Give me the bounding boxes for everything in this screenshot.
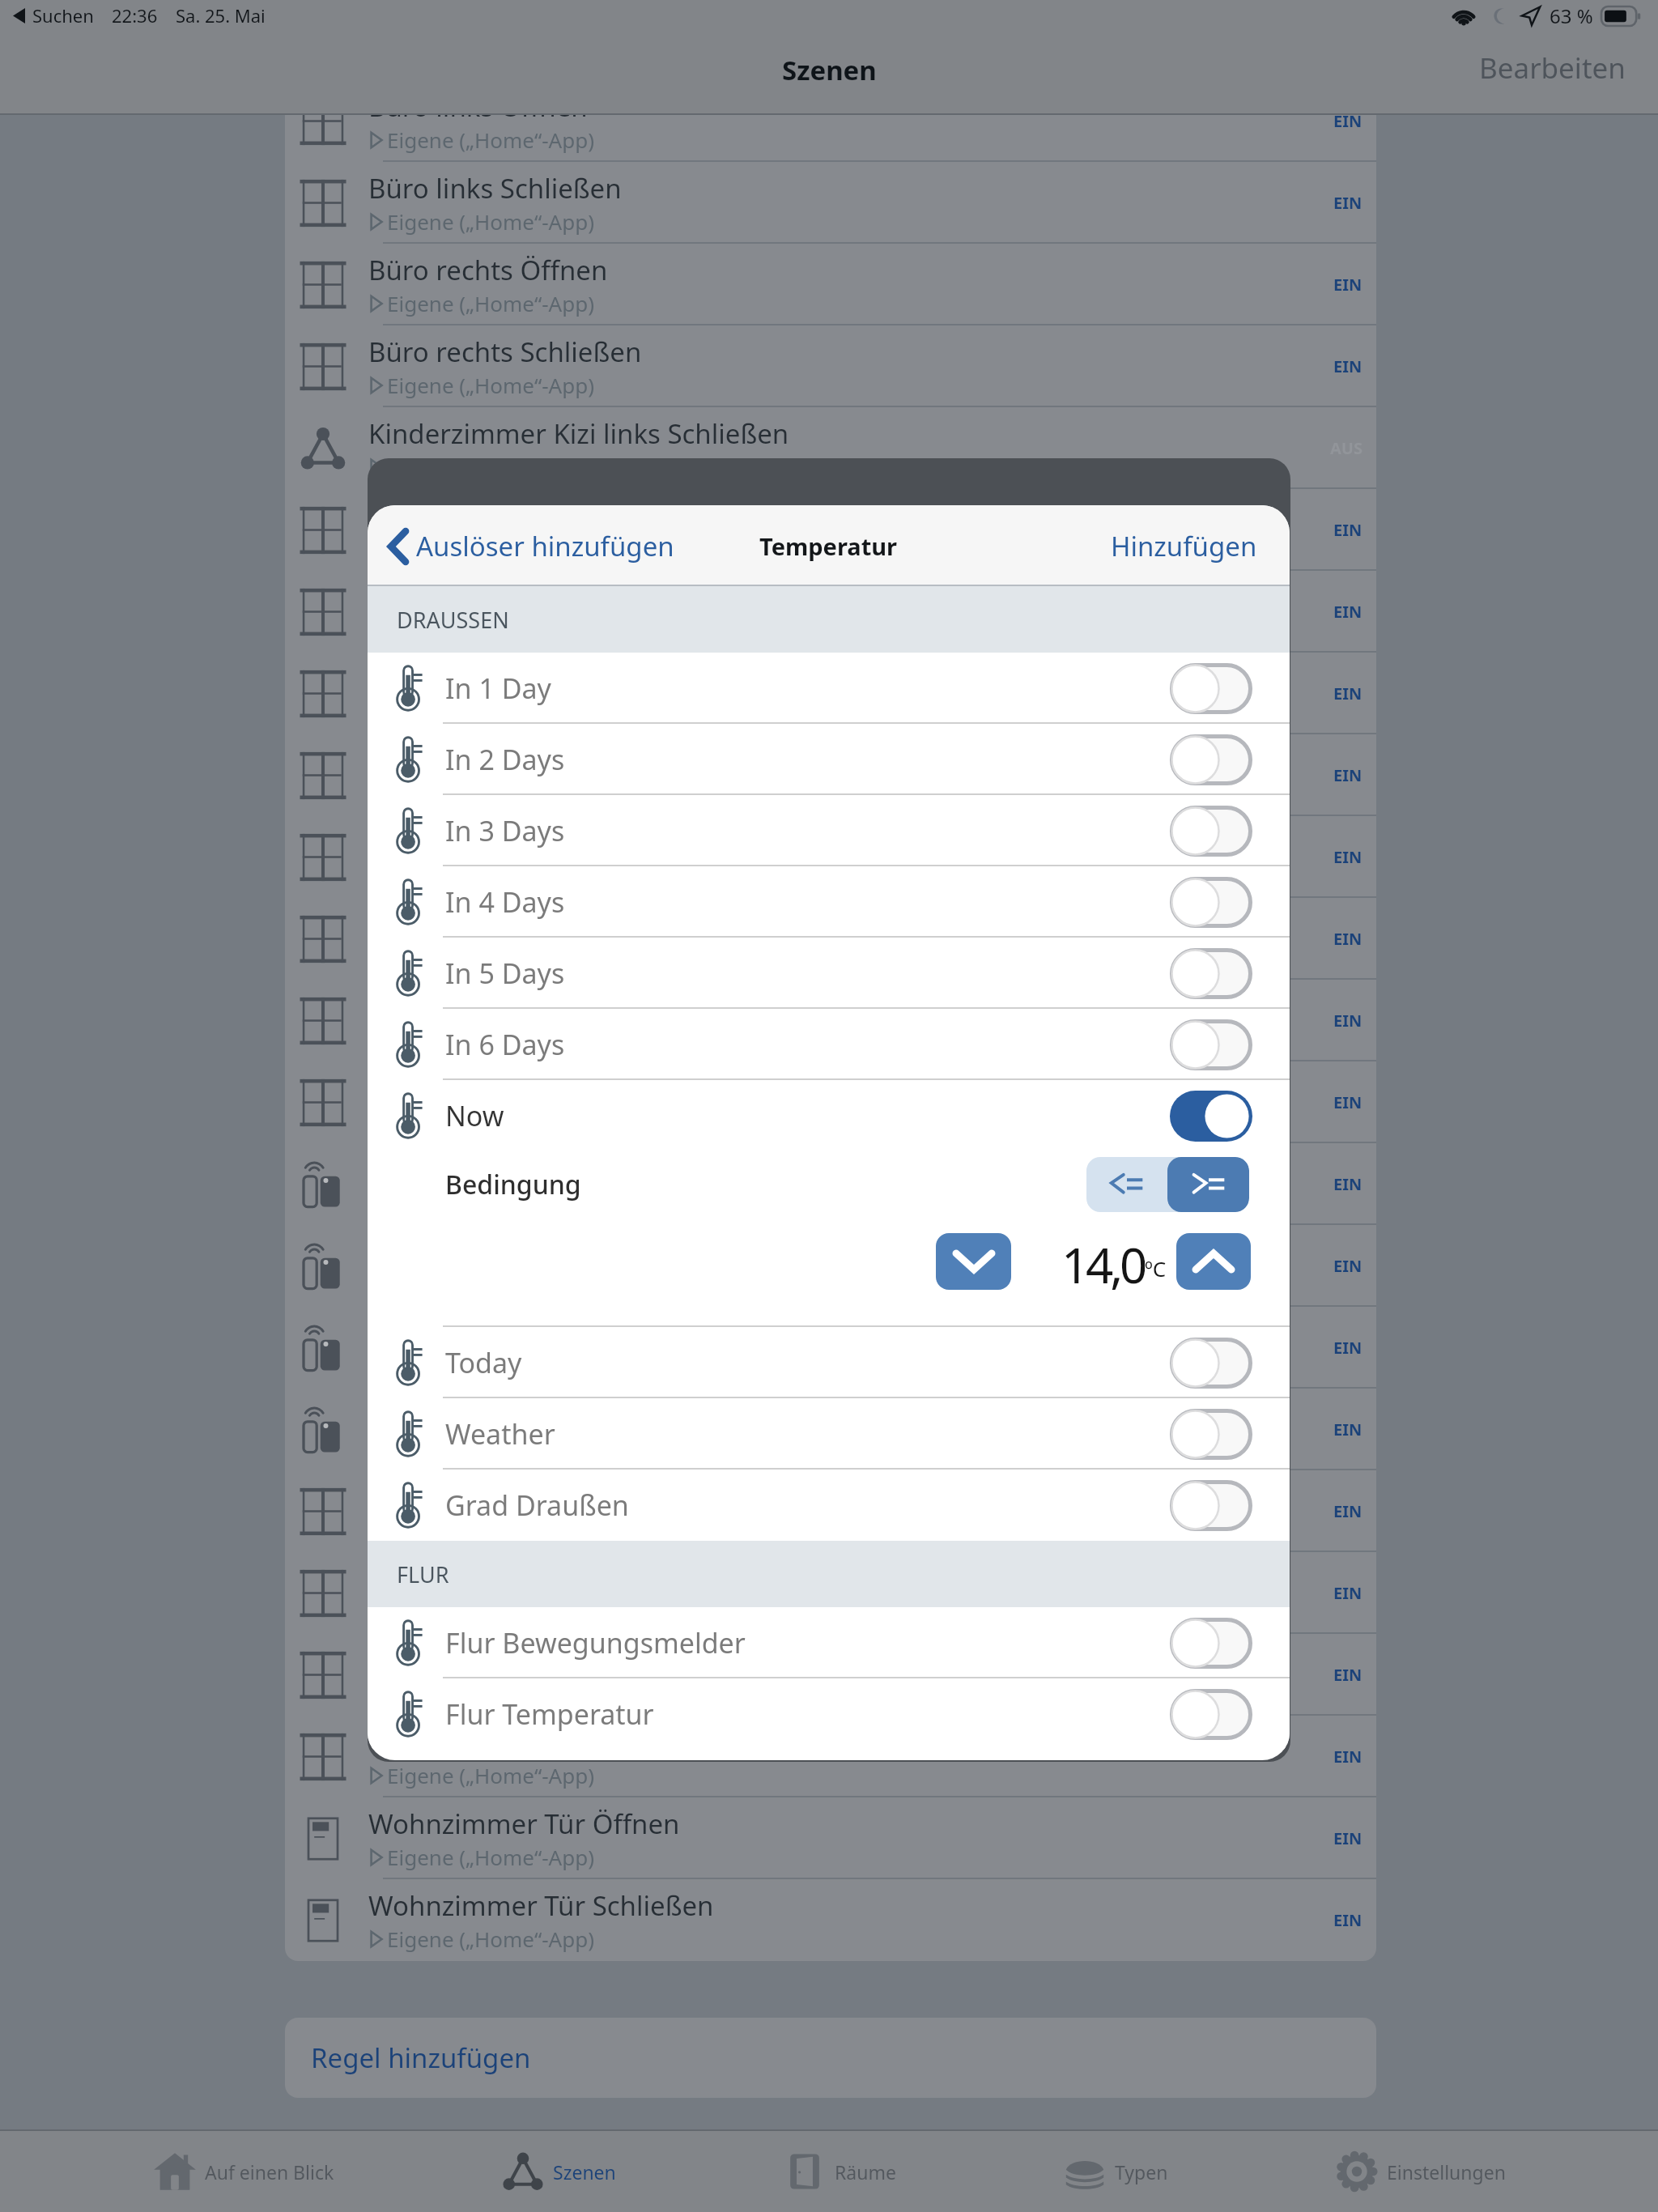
staticText: Kinderzimmer Kizi rechts Schließen — [368, 579, 809, 615]
button[interactable]: Toggle In 4 Days — [1170, 877, 1252, 928]
staticText: Eigene („Home“-App) — [387, 289, 594, 317]
staticText: Küche links Schließen — [368, 742, 639, 779]
button[interactable]: Toggle In 6 Days — [1170, 1019, 1252, 1070]
button[interactable]: Today — [368, 1327, 1290, 1398]
button[interactable]: Bearbeiten — [1479, 49, 1626, 87]
button[interactable]: Büro rechts Öffnen — [285, 244, 1376, 325]
staticText: Eigene („Home“-App) — [387, 1107, 594, 1135]
staticText: Schlafzimmer links Schließen — [368, 1070, 732, 1106]
button[interactable]: Less than or equal — [1086, 1157, 1167, 1212]
staticText: Szenen — [553, 2159, 616, 2184]
button[interactable]: Toggle In 3 Days — [1170, 806, 1252, 857]
staticText: Eigene („Home“-App) — [387, 1761, 594, 1789]
staticText: Flur Temperatur — [445, 1695, 654, 1733]
button[interactable]: Wohnzimmer links Schließen — [285, 1552, 1376, 1634]
staticText: EIN — [1333, 1746, 1363, 1767]
button[interactable]: Toggle In 1 Day — [1170, 663, 1252, 714]
button[interactable]: Toggle In 2 Days — [1170, 734, 1252, 785]
button[interactable]: Toggle Flur Temperatur — [1170, 1689, 1252, 1740]
staticText: Kinderzimmer Kizi links Schließen — [368, 415, 789, 452]
button[interactable]: Auslöser hinzufügen — [389, 528, 674, 564]
button[interactable]: Schalter 2 Küche — [285, 1225, 1376, 1307]
button[interactable]: Szenen — [501, 2131, 616, 2212]
button[interactable]: Grad Draußen — [368, 1470, 1290, 1541]
staticText: EIN — [1333, 1500, 1363, 1522]
button[interactable]: In 4 Days — [368, 866, 1290, 938]
button[interactable]: Kinderzimmer Kizi links Schließen — [285, 407, 1376, 489]
button[interactable]: Küche links Schließen — [285, 734, 1376, 816]
button[interactable]: Toggle In 5 Days — [1170, 948, 1252, 999]
button[interactable]: In 1 Day — [368, 653, 1290, 724]
staticText: Eigene („Home“-App) — [387, 943, 594, 972]
button[interactable]: Toggle Flur Bewegungsmelder — [1170, 1618, 1252, 1669]
button[interactable]: Wohnzimmer rechts Öffnen — [285, 1634, 1376, 1716]
button[interactable]: Toggle Weather — [1170, 1409, 1252, 1460]
button[interactable]: Büro links Öffnen — [285, 80, 1376, 162]
staticText: EIN — [1333, 683, 1363, 704]
button[interactable]: Wohnzimmer Tür Schließen — [285, 1879, 1376, 1961]
staticText: Eigene („Home“-App) — [387, 1679, 594, 1708]
button[interactable]: Wohnzimmer Tür Öffnen — [285, 1797, 1376, 1879]
staticText: Büro links Öffnen — [368, 88, 588, 125]
button[interactable]: Decrease temperature — [936, 1233, 1011, 1290]
button[interactable]: Kinderzimmer Kizi rechts Schließen — [285, 571, 1376, 653]
staticText: EIN — [1333, 1582, 1363, 1604]
staticText: EIN — [1333, 1909, 1363, 1931]
button[interactable]: In 5 Days — [368, 938, 1290, 1009]
button[interactable]: Typen — [1063, 2131, 1168, 2212]
staticText: Schlafzimmer links Öffnen — [368, 988, 698, 1024]
staticText: Auf einen Blick — [205, 2159, 334, 2184]
staticText: In 2 Days — [445, 741, 565, 778]
button[interactable]: Wohnzimmer rechts Schließen — [285, 1716, 1376, 1797]
staticText: Eigene („Home“-App) — [387, 1352, 594, 1380]
button[interactable]: Büro links Schließen — [285, 162, 1376, 244]
button[interactable]: Weather — [368, 1398, 1290, 1470]
staticText: AUS — [1330, 437, 1363, 459]
button[interactable]: Einstellungen — [1335, 2131, 1506, 2212]
button[interactable]: Toggle Today — [1170, 1338, 1252, 1389]
staticText: Schalter 3 Flur — [368, 1315, 548, 1351]
button[interactable]: Küche rechts Öffnen — [285, 816, 1376, 898]
button[interactable]: Flur Bewegungsmelder — [368, 1607, 1290, 1678]
button[interactable]: Regel hinzufügen — [285, 2018, 1376, 2098]
button[interactable]: Toggle Grad Draußen — [1170, 1480, 1252, 1531]
staticText: DRAUSSEN — [397, 605, 509, 635]
staticText: Sa. 25. Mai — [176, 3, 266, 28]
staticText: Büro links Schließen — [368, 170, 622, 206]
button[interactable]: Büro rechts Schließen — [285, 325, 1376, 407]
staticText: Eigene („Home“-App) — [387, 1843, 594, 1871]
button[interactable]: In 6 Days — [368, 1009, 1290, 1080]
button[interactable]: Küche rechts Schließen — [285, 898, 1376, 980]
button[interactable]: In 3 Days — [368, 795, 1290, 866]
staticText: EIN — [1333, 846, 1363, 868]
staticText: 14,0 — [1061, 1231, 1145, 1291]
button[interactable]: Hinzufügen — [1111, 528, 1257, 564]
staticText: Now — [445, 1097, 504, 1134]
button[interactable]: Schlafzimmer links Öffnen — [285, 980, 1376, 1061]
staticText: EIN — [1333, 355, 1363, 377]
button[interactable]: Now — [368, 1080, 1290, 1151]
button[interactable]: Schalter 3 Flur — [285, 1307, 1376, 1389]
button[interactable]: Räume — [783, 2131, 896, 2212]
staticText: Today — [445, 1344, 522, 1381]
staticText: Küche rechts Öffnen — [368, 824, 625, 861]
button[interactable]: Auf einen Blick — [153, 2131, 334, 2212]
staticText: Grad Draußen — [445, 1487, 629, 1524]
button[interactable]: Increase temperature — [1176, 1233, 1251, 1290]
staticText: In 3 Days — [445, 812, 565, 849]
button[interactable]: Schlafzimmer links Schließen — [285, 1061, 1376, 1143]
staticText: 22:36 — [112, 3, 158, 28]
staticText: Büro rechts Schließen — [368, 334, 642, 370]
staticText: Szenen — [782, 52, 877, 88]
button[interactable]: Schalter 4 Bad — [285, 1389, 1376, 1470]
button[interactable]: Schalter 1 Büro — [285, 1143, 1376, 1225]
button[interactable]: Flur Temperatur — [368, 1678, 1290, 1750]
staticText: Wohnzimmer rechts Schließen — [368, 1724, 750, 1760]
button[interactable]: Küche links Öffnen — [285, 653, 1376, 734]
button[interactable]: Greater than or equal — [1167, 1157, 1249, 1212]
staticText: EIN — [1333, 928, 1363, 950]
button[interactable]: Kinderzimmer Kizi rechts Öffnen — [285, 489, 1376, 571]
button[interactable]: In 2 Days — [368, 724, 1290, 795]
button[interactable]: Wohnzimmer links Öffnen — [285, 1470, 1376, 1552]
button[interactable]: Toggle Now — [1170, 1091, 1252, 1142]
